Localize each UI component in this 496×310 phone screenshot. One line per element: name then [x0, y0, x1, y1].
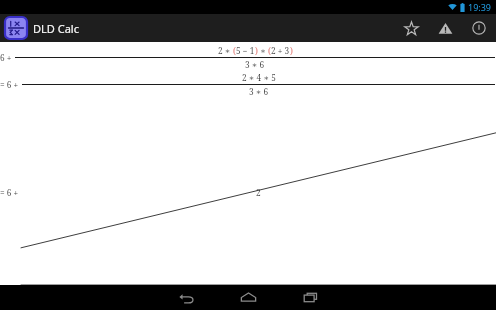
- button[interactable]: Home: [217, 285, 279, 310]
- button[interactable]: Back: [155, 285, 217, 310]
- staticText: 3 ∗ 6: [245, 59, 265, 70]
- staticText: 2: [256, 187, 261, 198]
- button[interactable]: Favourite: [394, 14, 428, 42]
- staticText: 6 +: [0, 52, 14, 63]
- staticText: 2 + 3: [271, 45, 290, 56]
- staticText: 19:39: [468, 1, 492, 13]
- staticText: DLD Calc: [33, 21, 79, 36]
- staticText: ∗: [258, 45, 268, 56]
- staticText: 2 ∗ 4 ∗ 5: [242, 72, 276, 83]
- staticText: (: [268, 45, 271, 56]
- button[interactable]: DLD Calc, navigate up: [0, 17, 87, 39]
- button[interactable]: Info: [462, 14, 496, 42]
- button[interactable]: Warning: [428, 14, 462, 42]
- button[interactable]: Recents: [279, 285, 341, 310]
- staticText: 2 ∗: [218, 45, 233, 56]
- staticText: = 6 +: [0, 187, 21, 198]
- staticText: 5 − 1: [236, 45, 255, 56]
- staticText: ): [290, 45, 293, 56]
- staticText: 3 ∗ 6: [249, 86, 269, 97]
- staticText: = 6 +: [0, 79, 21, 90]
- staticText: (: [233, 45, 236, 56]
- staticText: ): [255, 45, 258, 56]
